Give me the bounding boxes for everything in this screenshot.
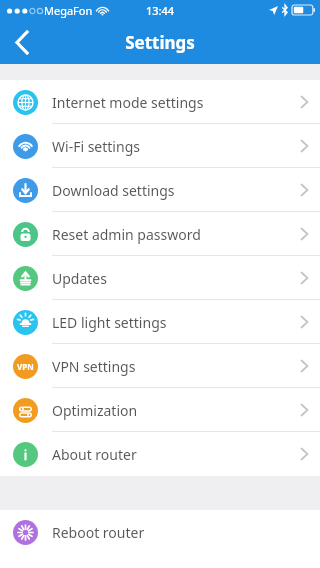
- staticText: MegaFon: [44, 3, 93, 18]
- staticText: About router: [52, 445, 301, 464]
- button[interactable]: LED light settings: [0, 300, 320, 344]
- button[interactable]: About router: [0, 432, 320, 476]
- staticText: 13:44: [146, 3, 175, 18]
- button[interactable]: Reset admin password: [0, 212, 320, 256]
- staticText: VPN: [17, 361, 34, 372]
- button[interactable]: VPN: [0, 344, 320, 388]
- staticText: Updates: [52, 269, 301, 288]
- button[interactable]: Updates: [0, 256, 320, 300]
- staticText: LED light settings: [52, 313, 301, 332]
- button[interactable]: Download settings: [0, 168, 320, 212]
- staticText: Reset admin password: [52, 225, 301, 244]
- staticText: Internet mode settings: [52, 93, 301, 112]
- button[interactable]: Reboot router: [0, 510, 320, 554]
- staticText: Optimization: [52, 401, 301, 420]
- staticText: VPN settings: [52, 357, 301, 376]
- button[interactable]: Internet mode settings: [0, 80, 320, 124]
- button[interactable]: Back: [0, 20, 44, 64]
- staticText: Download settings: [52, 181, 301, 200]
- staticText: Wi-Fi settings: [52, 137, 301, 156]
- button[interactable]: Wi-Fi settings: [0, 124, 320, 168]
- staticText: Reboot router: [52, 523, 308, 542]
- button[interactable]: Optimization: [0, 388, 320, 432]
- staticText: Settings: [125, 31, 195, 54]
